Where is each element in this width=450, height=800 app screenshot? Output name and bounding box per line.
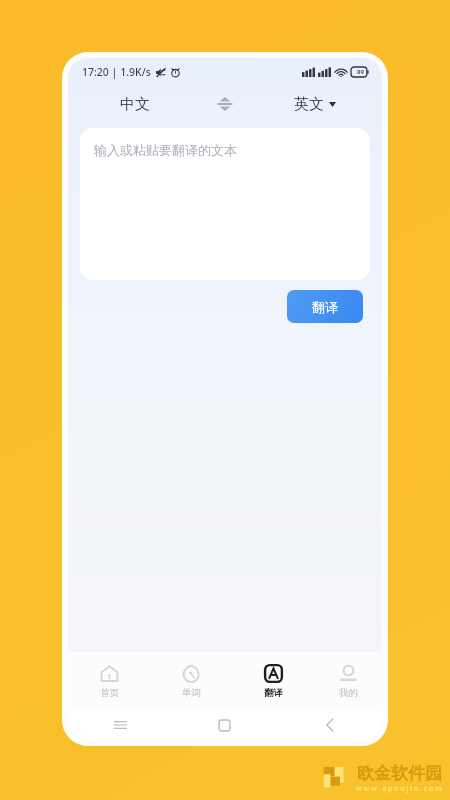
staticText: 89	[357, 68, 364, 76]
staticText: 英文	[294, 95, 324, 114]
button[interactable]: 英文	[248, 86, 382, 122]
button[interactable]: Swap languages	[202, 86, 248, 122]
button[interactable]: 翻译	[232, 652, 314, 710]
staticText: 中文	[120, 95, 150, 114]
staticText: 单词	[182, 687, 201, 699]
staticText: 输入或粘贴要翻译的文本	[94, 142, 237, 158]
button[interactable]: 输入或粘贴要翻译的文本	[80, 128, 370, 280]
button[interactable]: Recents	[68, 710, 172, 740]
staticText: 翻译	[264, 687, 283, 699]
staticText: 我的	[339, 687, 358, 699]
button[interactable]: 首页	[68, 652, 150, 710]
button[interactable]: 翻译	[287, 290, 363, 323]
button[interactable]: Back	[277, 710, 382, 740]
button[interactable]: 单词	[150, 652, 232, 710]
button[interactable]: 中文	[68, 86, 202, 122]
button[interactable]: Home	[172, 710, 277, 740]
staticText: 欧金软件园	[357, 763, 442, 784]
staticText: 首页	[100, 687, 119, 699]
button[interactable]: 我的	[314, 652, 382, 710]
staticText: 17:20 | 1.9K/s	[82, 65, 151, 79]
staticText: 翻译	[312, 299, 338, 315]
staticText: w w w . a p o u j i n . c o m	[356, 784, 442, 794]
